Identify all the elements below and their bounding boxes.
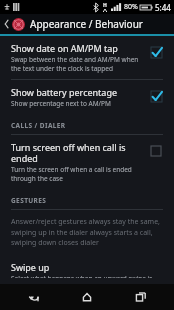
button[interactable]: Home	[67, 284, 107, 310]
staticText: Select what happens when an upward swipe…	[11, 274, 164, 278]
staticText: Show percentage next to AM/PM	[11, 99, 111, 108]
staticText: Turn screen off when call is ended	[11, 141, 140, 164]
button[interactable]: Show date on AM/PM tap	[0, 36, 174, 79]
staticText: GESTURES	[11, 196, 47, 205]
staticText: Turn the screen off when a call is ended…	[11, 165, 140, 183]
staticText: Swap between the date and AM/PM when the…	[11, 55, 140, 73]
staticText: Appearance / Behaviour	[30, 17, 143, 31]
staticText: 5:44	[155, 2, 171, 13]
button[interactable]: Back	[14, 284, 54, 310]
staticText: Show battery percentage	[11, 86, 118, 98]
button[interactable]: Turn screen off when call is ended	[0, 135, 174, 189]
staticText: 80%	[124, 2, 138, 12]
button[interactable]: Swipe up	[0, 255, 174, 284]
staticText: CALLS / DIALER	[11, 121, 66, 130]
staticText: Show date on AM/PM tap	[11, 42, 118, 54]
button[interactable]: Navigate up, Appearance / Behaviour	[0, 14, 174, 34]
staticText: H	[103, 2, 107, 9]
staticText: Swipe up	[11, 261, 50, 273]
button[interactable]: Recent apps	[121, 284, 161, 310]
button[interactable]: Show battery percentage	[0, 80, 174, 114]
staticText: Answer/reject gestures always stay the s…	[11, 217, 161, 247]
